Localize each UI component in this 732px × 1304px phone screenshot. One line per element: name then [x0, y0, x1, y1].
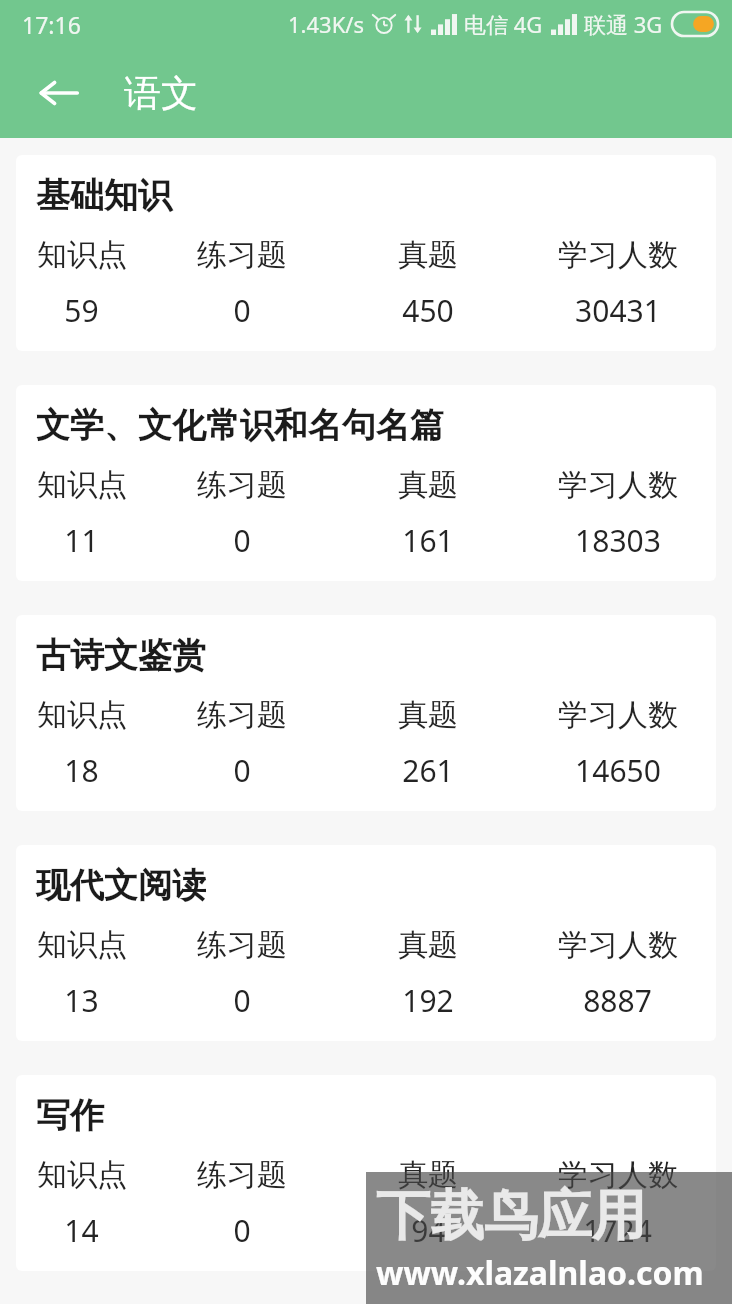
staticText: 学习人数 — [558, 926, 678, 964]
staticText: 17:16 — [22, 9, 81, 40]
staticText: 192 — [402, 980, 454, 1021]
staticText: 古诗文鉴赏 — [36, 634, 206, 677]
staticText: 练习题 — [197, 466, 287, 504]
staticText: 450 — [402, 290, 454, 331]
staticText: 学习人数 — [558, 696, 678, 734]
staticText: 59 — [64, 290, 99, 331]
staticText: 161 — [402, 520, 454, 561]
staticText: 知识点 — [37, 466, 127, 504]
staticText: www.xlazalnlao.com — [376, 1251, 704, 1295]
staticText: 13 — [64, 980, 99, 1021]
staticText: 基础知识 — [36, 174, 172, 217]
staticText: 1724 — [583, 1210, 652, 1251]
staticText: 18303 — [575, 520, 661, 561]
staticText: 真题 — [398, 696, 458, 734]
button[interactable]: 现代文阅读 — [16, 845, 716, 1041]
staticText: 学习人数 — [558, 1156, 678, 1194]
staticText: 下载鸟应用 — [376, 1182, 646, 1250]
staticText: 18 — [64, 750, 99, 791]
staticText: 学习人数 — [558, 466, 678, 504]
staticText: 真题 — [398, 1156, 458, 1194]
staticText: 11 — [64, 520, 99, 561]
staticText: 练习题 — [197, 926, 287, 964]
staticText: 261 — [402, 750, 454, 791]
staticText: 文学、文化常识和名句名篇 — [36, 404, 444, 447]
staticText: 知识点 — [37, 696, 127, 734]
staticText: 真题 — [398, 236, 458, 274]
staticText: 0 — [233, 750, 251, 791]
button[interactable]: 古诗文鉴赏 — [16, 615, 716, 811]
staticText: 练习题 — [197, 236, 287, 274]
button[interactable]: Back — [22, 57, 94, 129]
staticText: 知识点 — [37, 926, 127, 964]
button[interactable]: 文学、文化常识和名句名篇 — [16, 385, 716, 581]
staticText: 真题 — [398, 466, 458, 504]
staticText: 知识点 — [37, 236, 127, 274]
staticText: 94 — [411, 1210, 446, 1251]
staticText: 练习题 — [197, 1156, 287, 1194]
staticText: 0 — [233, 290, 251, 331]
staticText: 14 — [64, 1210, 99, 1251]
staticText: 0 — [233, 520, 251, 561]
staticText: 知识点 — [37, 1156, 127, 1194]
staticText: 练习题 — [197, 696, 287, 734]
button[interactable]: 写作 — [16, 1075, 716, 1271]
button[interactable]: 基础知识 — [16, 155, 716, 351]
staticText: 8887 — [583, 980, 652, 1021]
staticText: 1.43K/s — [288, 9, 364, 39]
staticText: 0 — [233, 1210, 251, 1251]
staticText: 现代文阅读 — [36, 864, 206, 907]
staticText: 联通 3G — [584, 9, 663, 39]
staticText: 真题 — [398, 926, 458, 964]
staticText: 写作 — [36, 1094, 104, 1137]
staticText: 0 — [233, 980, 251, 1021]
staticText: 语文 — [124, 70, 198, 117]
staticText: 30431 — [575, 290, 661, 331]
staticText: 学习人数 — [558, 236, 678, 274]
staticText: 电信 4G — [464, 9, 543, 39]
staticText: 14650 — [575, 750, 661, 791]
